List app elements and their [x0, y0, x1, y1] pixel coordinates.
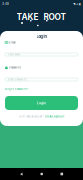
staticText: ROOT: [43, 12, 66, 22]
staticText: Login: [37, 101, 46, 105]
staticText: Email: [9, 41, 16, 44]
staticText: Create Account: [44, 115, 64, 118]
button[interactable]: Create Account: [44, 115, 64, 118]
button[interactable]: Forgot Password?: [5, 87, 28, 91]
staticText: Enter email: [8, 53, 21, 56]
staticText: TAKE: [16, 12, 38, 22]
staticText: Enter password: [8, 78, 27, 81]
staticText: Password: [9, 66, 21, 69]
staticText: 3:48: [2, 2, 9, 6]
button[interactable]: Login: [5, 96, 78, 110]
staticText: Don't have an account?: [18, 115, 43, 118]
staticText: ◥ ⊿ ▮: [73, 2, 81, 6]
staticText: Login: [36, 34, 46, 39]
staticText: Forgot Password?: [5, 87, 28, 91]
